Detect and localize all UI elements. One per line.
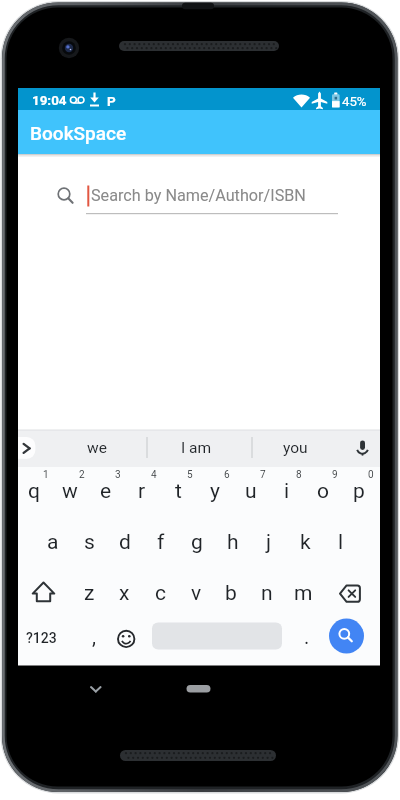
staticText: a: [47, 530, 59, 555]
staticText: 9: [332, 469, 338, 481]
staticText: e: [100, 479, 112, 504]
staticText: w: [62, 479, 78, 504]
staticText: I am: [181, 439, 212, 457]
staticText: y: [210, 479, 220, 504]
staticText: q: [28, 479, 40, 504]
staticText: BookSpace: [30, 122, 127, 144]
staticText: .: [304, 625, 310, 648]
staticText: ?123: [26, 630, 57, 646]
staticText: i: [284, 479, 290, 504]
staticText: b: [225, 581, 237, 606]
staticText: g: [191, 530, 203, 555]
staticText: 8: [296, 469, 302, 481]
staticText: u: [245, 479, 257, 504]
staticText: we: [87, 439, 107, 457]
staticText: P: [107, 93, 116, 109]
staticText: c: [155, 581, 166, 606]
staticText: o: [317, 479, 329, 504]
staticText: l: [338, 530, 344, 555]
staticText: m: [294, 581, 313, 606]
staticText: 6: [224, 469, 230, 481]
staticText: f: [157, 530, 165, 555]
staticText: k: [300, 530, 311, 555]
staticText: h: [227, 530, 239, 555]
staticText: s: [84, 530, 95, 555]
staticText: n: [261, 581, 273, 606]
staticText: 7: [260, 469, 266, 481]
staticText: 2: [79, 469, 85, 481]
staticText: 0: [368, 469, 374, 481]
staticText: you: [283, 439, 308, 457]
staticText: 5: [187, 469, 193, 481]
staticText: 1: [43, 469, 49, 481]
staticText: z: [84, 581, 95, 606]
staticText: Search by Name/Author/ISBN: [91, 186, 306, 205]
staticText: 45%: [342, 94, 367, 109]
staticText: p: [353, 479, 365, 504]
staticText: v: [191, 581, 202, 606]
staticText: ,: [92, 625, 96, 648]
staticText: d: [119, 530, 131, 555]
staticText: t: [175, 479, 182, 504]
staticText: 19:04: [32, 93, 67, 109]
staticText: x: [119, 581, 130, 606]
staticText: r: [138, 479, 146, 504]
staticText: j: [266, 530, 272, 555]
staticText: 4: [151, 469, 157, 481]
staticText: 3: [115, 469, 121, 481]
